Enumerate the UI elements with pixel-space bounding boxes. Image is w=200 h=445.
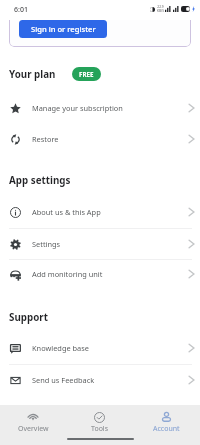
button[interactable]: FREE: [72, 67, 101, 81]
button[interactable]: Sign in or register: [19, 20, 107, 38]
staticText: Your plan: [9, 68, 56, 81]
staticText: App settings: [9, 174, 71, 187]
staticText: Send us Feedback: [32, 375, 95, 385]
staticText: Add monitoring unit: [32, 269, 103, 279]
button[interactable]: Restore: [0, 124, 200, 154]
button[interactable]: Knowledge base: [0, 333, 200, 363]
button[interactable]: Add monitoring unit: [0, 259, 200, 289]
staticText: About us & this App: [32, 207, 101, 217]
staticText: Restore: [32, 134, 59, 144]
button[interactable]: Settings: [0, 229, 200, 259]
other: Tools: [94, 412, 105, 423]
button[interactable]: Account: [133, 405, 200, 445]
staticText: Knowledge base: [32, 343, 89, 353]
button[interactable]: Send us Feedback: [0, 365, 200, 395]
staticText: Sign in or register: [31, 24, 96, 34]
staticText: FREE: [79, 70, 94, 78]
staticText: Settings: [32, 239, 61, 249]
button[interactable]: About us & this App: [0, 197, 200, 227]
staticText: Support: [9, 311, 48, 324]
other: Account: [162, 412, 171, 422]
staticText: 6:01: [14, 5, 28, 15]
button[interactable]: Overview: [0, 405, 66, 445]
staticText: Tools: [91, 424, 109, 434]
staticText: Manage your subscription: [32, 103, 123, 113]
staticText: Overview: [18, 424, 49, 434]
other: Overview: [27, 411, 39, 423]
button[interactable]: Tools: [66, 405, 133, 445]
button[interactable]: Manage your subscription: [0, 93, 200, 123]
staticText: 22.9 KB/S: [157, 5, 164, 13]
staticText: Account: [153, 424, 180, 434]
